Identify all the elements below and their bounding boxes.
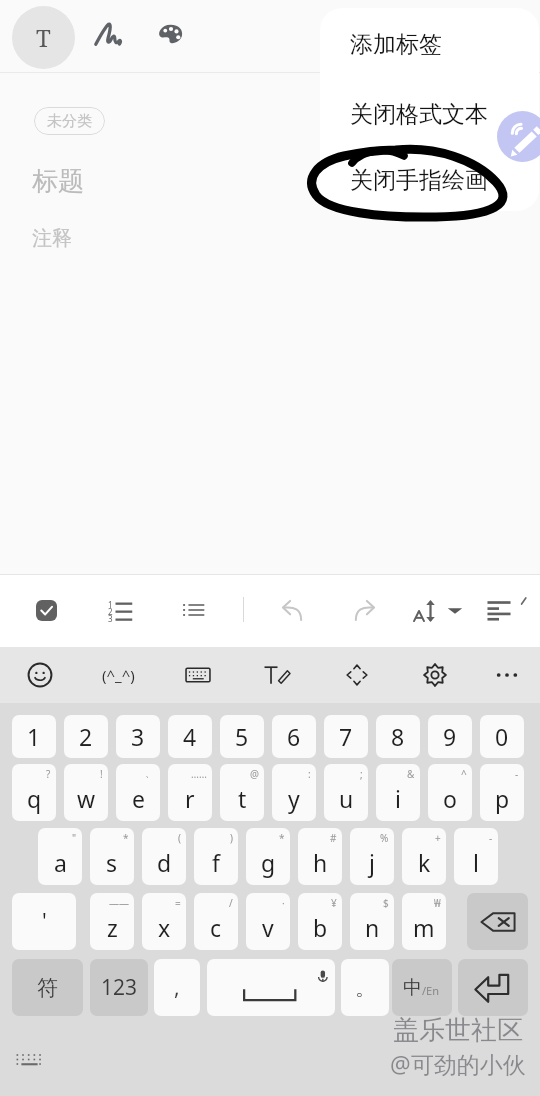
button[interactable]: ;: [324, 764, 368, 821]
staticText: 3: [108, 613, 113, 624]
button[interactable]: Font size: [404, 588, 444, 632]
button[interactable]: -: [480, 764, 524, 821]
button[interactable]: ?: [12, 764, 56, 821]
button[interactable]: ¥: [298, 893, 342, 950]
button[interactable]: 6: [272, 715, 316, 758]
button[interactable]: Kaomoji: [79, 647, 158, 703]
staticText: 3: [131, 721, 145, 752]
button[interactable]: Backspace: [467, 893, 528, 950]
button[interactable]: 1: [12, 715, 56, 758]
button[interactable]: 0: [480, 715, 524, 758]
button[interactable]: Palette: [142, 6, 198, 62]
staticText: u: [339, 783, 354, 814]
button[interactable]: Emoji: [0, 647, 79, 703]
button[interactable]: (: [142, 828, 186, 885]
button[interactable]: Alignment: [479, 588, 519, 632]
button[interactable]: 、: [116, 764, 160, 821]
staticText: ;: [360, 767, 363, 781]
button[interactable]: [392, 959, 452, 1016]
button[interactable]: Enter: [458, 959, 528, 1016]
staticText: s: [106, 847, 118, 878]
button[interactable]: Redo: [343, 588, 385, 632]
staticText: e: [132, 783, 145, 814]
staticText: 符: [37, 975, 58, 1001]
button[interactable]: ·: [246, 893, 290, 950]
button[interactable]: 关闭手指绘画: [320, 149, 539, 211]
button[interactable]: ……: [168, 764, 212, 821]
staticText: 1: [27, 721, 41, 752]
button[interactable]: Handwriting: [80, 6, 136, 62]
staticText: 标题: [32, 165, 84, 198]
button[interactable]: *: [246, 828, 290, 885]
button[interactable]: 符: [12, 959, 83, 1016]
staticText: h: [313, 847, 328, 878]
staticText: i: [395, 783, 401, 814]
button[interactable]: Handwriting input: [237, 647, 317, 703]
staticText: ': [42, 907, 47, 936]
button[interactable]: 123: [90, 959, 148, 1016]
button[interactable]: Text mode: [12, 6, 75, 69]
button[interactable]: *: [90, 828, 134, 885]
staticText: 2: [79, 721, 93, 752]
button[interactable]: Keyboard layout: [158, 647, 237, 703]
button[interactable]: 8: [376, 715, 420, 758]
staticText: c: [210, 912, 222, 943]
staticText: ": [72, 831, 77, 845]
staticText: b: [313, 912, 328, 943]
staticText: w: [77, 783, 96, 814]
button[interactable]: ^: [428, 764, 472, 821]
staticText: 关闭格式文本: [350, 100, 488, 129]
button[interactable]: Settings: [396, 647, 474, 703]
button[interactable]: ,: [154, 959, 200, 1016]
button[interactable]: 4: [168, 715, 212, 758]
button[interactable]: &: [376, 764, 420, 821]
button[interactable]: $: [350, 893, 394, 950]
staticText: t: [238, 783, 247, 814]
button[interactable]: Undo: [272, 588, 314, 632]
button[interactable]: #: [298, 828, 342, 885]
button[interactable]: ₩: [402, 893, 446, 950]
staticText: =: [175, 896, 181, 910]
button[interactable]: Space: [207, 959, 335, 1016]
button[interactable]: More: [474, 647, 540, 703]
button[interactable]: 未分类: [34, 107, 105, 135]
button[interactable]: 5: [220, 715, 264, 758]
button[interactable]: 7: [324, 715, 368, 758]
staticText: ……: [191, 767, 207, 781]
staticText: 6: [287, 721, 301, 752]
staticText: 9: [443, 721, 457, 752]
button[interactable]: 3: [116, 715, 160, 758]
button[interactable]: !: [64, 764, 108, 821]
staticText: -: [489, 831, 493, 845]
button[interactable]: ': [12, 893, 76, 950]
button[interactable]: Move cursor: [317, 647, 396, 703]
button[interactable]: 添加标签: [320, 9, 539, 79]
button[interactable]: AI draw: [497, 111, 540, 162]
button[interactable]: ——: [90, 893, 134, 950]
button[interactable]: @: [220, 764, 264, 821]
button[interactable]: :: [272, 764, 316, 821]
staticText: #: [330, 831, 337, 845]
button[interactable]: Numbered list: [99, 588, 141, 632]
button[interactable]: =: [142, 893, 186, 950]
button[interactable]: 2: [64, 715, 108, 758]
button[interactable]: Switch input method: [14, 1050, 44, 1070]
button[interactable]: ": [38, 828, 82, 885]
button[interactable]: +: [402, 828, 446, 885]
button[interactable]: Style options: [441, 590, 469, 630]
staticText: l: [473, 847, 479, 878]
staticText: n: [365, 912, 380, 943]
button[interactable]: ): [194, 828, 238, 885]
staticText: 。: [355, 975, 376, 1001]
staticText: 添加标签: [350, 30, 442, 59]
button[interactable]: 关闭格式文本: [320, 79, 539, 149]
button[interactable]: -: [454, 828, 498, 885]
staticText: 中: [403, 976, 422, 1000]
button[interactable]: %: [350, 828, 394, 885]
button[interactable]: Bulleted list: [172, 588, 214, 632]
button[interactable]: Checkbox list: [25, 588, 67, 632]
staticText: $: [383, 896, 389, 910]
button[interactable]: 9: [428, 715, 472, 758]
button[interactable]: /: [194, 893, 238, 950]
button[interactable]: 。: [341, 959, 389, 1016]
